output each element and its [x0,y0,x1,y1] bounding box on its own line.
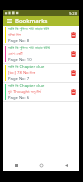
staticText: [to:] 78 No:তিক [8,70,36,76]
button[interactable]: Delete bookmark [68,64,78,82]
button[interactable]: Recent apps [3,159,29,171]
staticText: দুই Thought অনু-দীর্ঘ [8,89,41,95]
button[interactable]: আমি কি Chapter clue [3,64,79,83]
button[interactable]: Open navigation menu [5,17,13,25]
staticText: আমি কি Chapter clue [8,83,45,89]
staticText: Bookmarks [15,17,48,25]
button[interactable]: Home [29,159,54,171]
button[interactable]: Delete bookmark [68,26,78,44]
staticText: 9:28 [69,11,77,16]
button[interactable]: আমি কি শুনিতে পাই তাহার ধ্বনি [3,26,79,45]
button[interactable]: আমি কি শুনিতে পাই তাহার ধ্বনি। [3,45,79,64]
staticText: Page No: 8 [8,38,30,44]
button[interactable]: Delete bookmark [68,83,78,101]
staticText: আমি কি শুনিতে পাই তাহার ধ্বনি [8,26,50,32]
staticText: Page No: 6 [8,95,30,101]
staticText: এরূপ একটি [8,51,23,57]
staticText: Page No: 7 [8,76,30,82]
staticText: আমি কি শুনিতে পাই তাহার ধ্বনি। [8,45,51,51]
button[interactable]: Delete bookmark [68,45,78,63]
staticText: বলিয়া দিল [8,32,21,38]
staticText: Page No: 10 [8,57,32,63]
button[interactable]: Back [54,159,79,171]
staticText: আমি কি Chapter clue [8,64,45,70]
button[interactable]: আমি কি Chapter clue [3,83,79,102]
